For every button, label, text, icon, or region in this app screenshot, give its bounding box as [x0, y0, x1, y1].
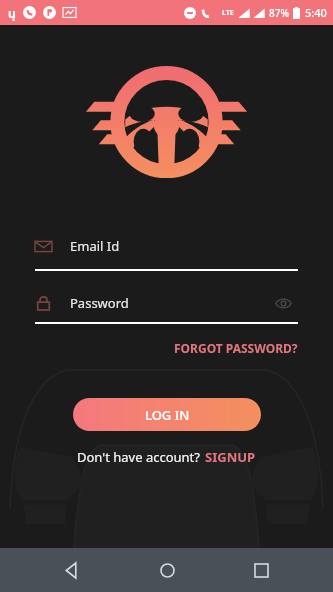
button[interactable]: Recent apps — [239, 548, 283, 592]
button[interactable]: Password — [35, 288, 268, 318]
staticText: LOG IN — [145, 406, 190, 424]
staticText: Don't have account? — [77, 448, 200, 466]
button[interactable]: SIGNUP — [205, 448, 256, 466]
button[interactable]: FORGOT PASSWORD? — [174, 338, 298, 358]
button[interactable]: Back — [50, 548, 94, 592]
staticText: Email Id — [70, 237, 120, 255]
staticText: 87% — [269, 6, 289, 20]
staticText: FORGOT PASSWORD? — [174, 340, 298, 356]
button[interactable]: Show password — [268, 288, 298, 318]
staticText: ų — [8, 5, 16, 21]
button[interactable]: Home — [145, 548, 189, 592]
staticText: Password — [70, 294, 129, 312]
staticText: LTE — [222, 8, 234, 18]
staticText: 5:40 — [305, 5, 327, 20]
button[interactable]: Email Id — [35, 231, 298, 261]
staticText: SIGNUP — [205, 448, 256, 466]
button[interactable]: LOG IN — [73, 398, 261, 431]
